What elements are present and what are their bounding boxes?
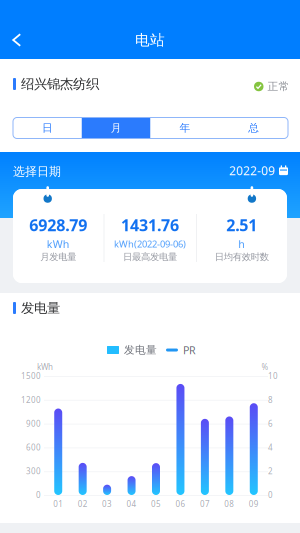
button[interactable]: Back <box>0 21 34 59</box>
staticText: kWh <box>47 237 70 251</box>
staticText: 绍兴锦杰纺织 <box>21 76 99 92</box>
staticText: 07 <box>200 499 210 509</box>
staticText: 300 <box>26 466 41 476</box>
staticText: 6 <box>268 418 273 429</box>
staticText: 09 <box>249 499 259 509</box>
staticText: 10 <box>268 371 278 381</box>
staticText: 发电量 <box>124 343 157 356</box>
staticText: 4 <box>268 442 273 453</box>
staticText: 04 <box>127 499 137 509</box>
staticText: 日均有效时数 <box>215 251 269 263</box>
staticText: 2.51 <box>226 214 257 236</box>
staticText: 600 <box>26 442 41 453</box>
button[interactable]: 2022-09 <box>229 162 289 178</box>
staticText: kWh <box>37 362 53 372</box>
staticText: 正常 <box>267 80 289 93</box>
staticText: 03 <box>102 499 112 509</box>
staticText: 06 <box>175 499 185 509</box>
staticText: 8 <box>268 394 273 405</box>
staticText: 1500 <box>21 371 41 381</box>
staticText: 发电量 <box>21 300 60 316</box>
button[interactable]: 总 <box>219 117 288 138</box>
staticText: % <box>261 362 268 372</box>
staticText: 0 <box>268 490 273 500</box>
staticText: 0 <box>36 490 41 500</box>
staticText: 选择日期 <box>13 164 61 179</box>
button[interactable]: 年 <box>150 117 219 138</box>
staticText: 总 <box>248 121 259 134</box>
button[interactable]: 月 <box>82 117 151 138</box>
staticText: 月 <box>111 121 122 134</box>
staticText: 6928.79 <box>29 214 87 236</box>
staticText: 05 <box>151 499 161 509</box>
staticText: h <box>238 237 245 251</box>
staticText: 年 <box>179 121 190 134</box>
staticText: 900 <box>26 418 41 429</box>
staticText: 01 <box>53 499 63 509</box>
staticText: 日最高发电量 <box>123 251 177 263</box>
staticText: 2 <box>268 466 273 476</box>
staticText: 08 <box>224 499 234 509</box>
staticText: 1431.76 <box>121 214 179 236</box>
staticText: 电站 <box>135 31 165 49</box>
staticText: 02 <box>78 499 88 509</box>
staticText: 1200 <box>21 394 41 405</box>
staticText: 2022-09 <box>229 162 275 178</box>
staticText: PR <box>183 343 196 357</box>
staticText: 日 <box>42 121 53 134</box>
staticText: 月发电量 <box>40 251 76 263</box>
button[interactable]: 日 <box>13 117 82 138</box>
staticText: kWh(2022-09-06) <box>114 238 186 250</box>
